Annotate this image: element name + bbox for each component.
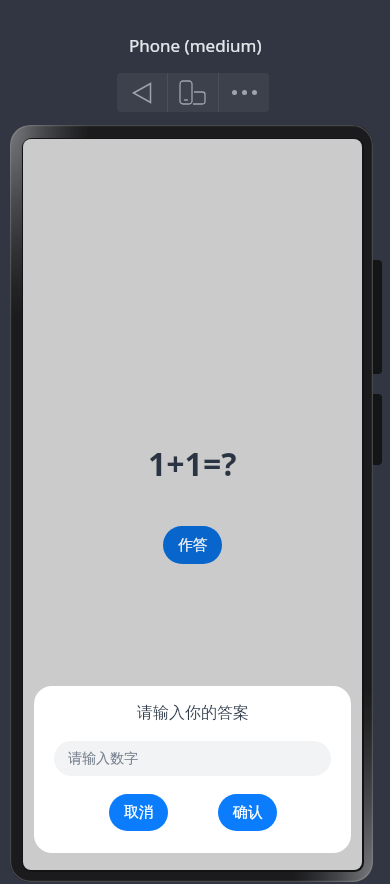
button[interactable]: Previous — [117, 73, 167, 112]
staticText: 1+1=? — [148, 442, 237, 486]
staticText: 请输入你的答案 — [137, 703, 249, 723]
button[interactable]: 请输入数字 — [54, 741, 331, 776]
button[interactable]: Select device — [168, 73, 218, 112]
button[interactable]: 作答 — [163, 526, 222, 564]
staticText: 确认 — [233, 803, 263, 822]
staticText: 取消 — [124, 803, 154, 822]
staticText: Phone (medium) — [129, 34, 262, 56]
button[interactable]: More options — [219, 73, 269, 112]
button[interactable]: 取消 — [109, 794, 168, 831]
staticText: 请输入数字 — [68, 750, 138, 768]
button[interactable]: 确认 — [218, 794, 277, 831]
staticText: 作答 — [178, 536, 208, 555]
